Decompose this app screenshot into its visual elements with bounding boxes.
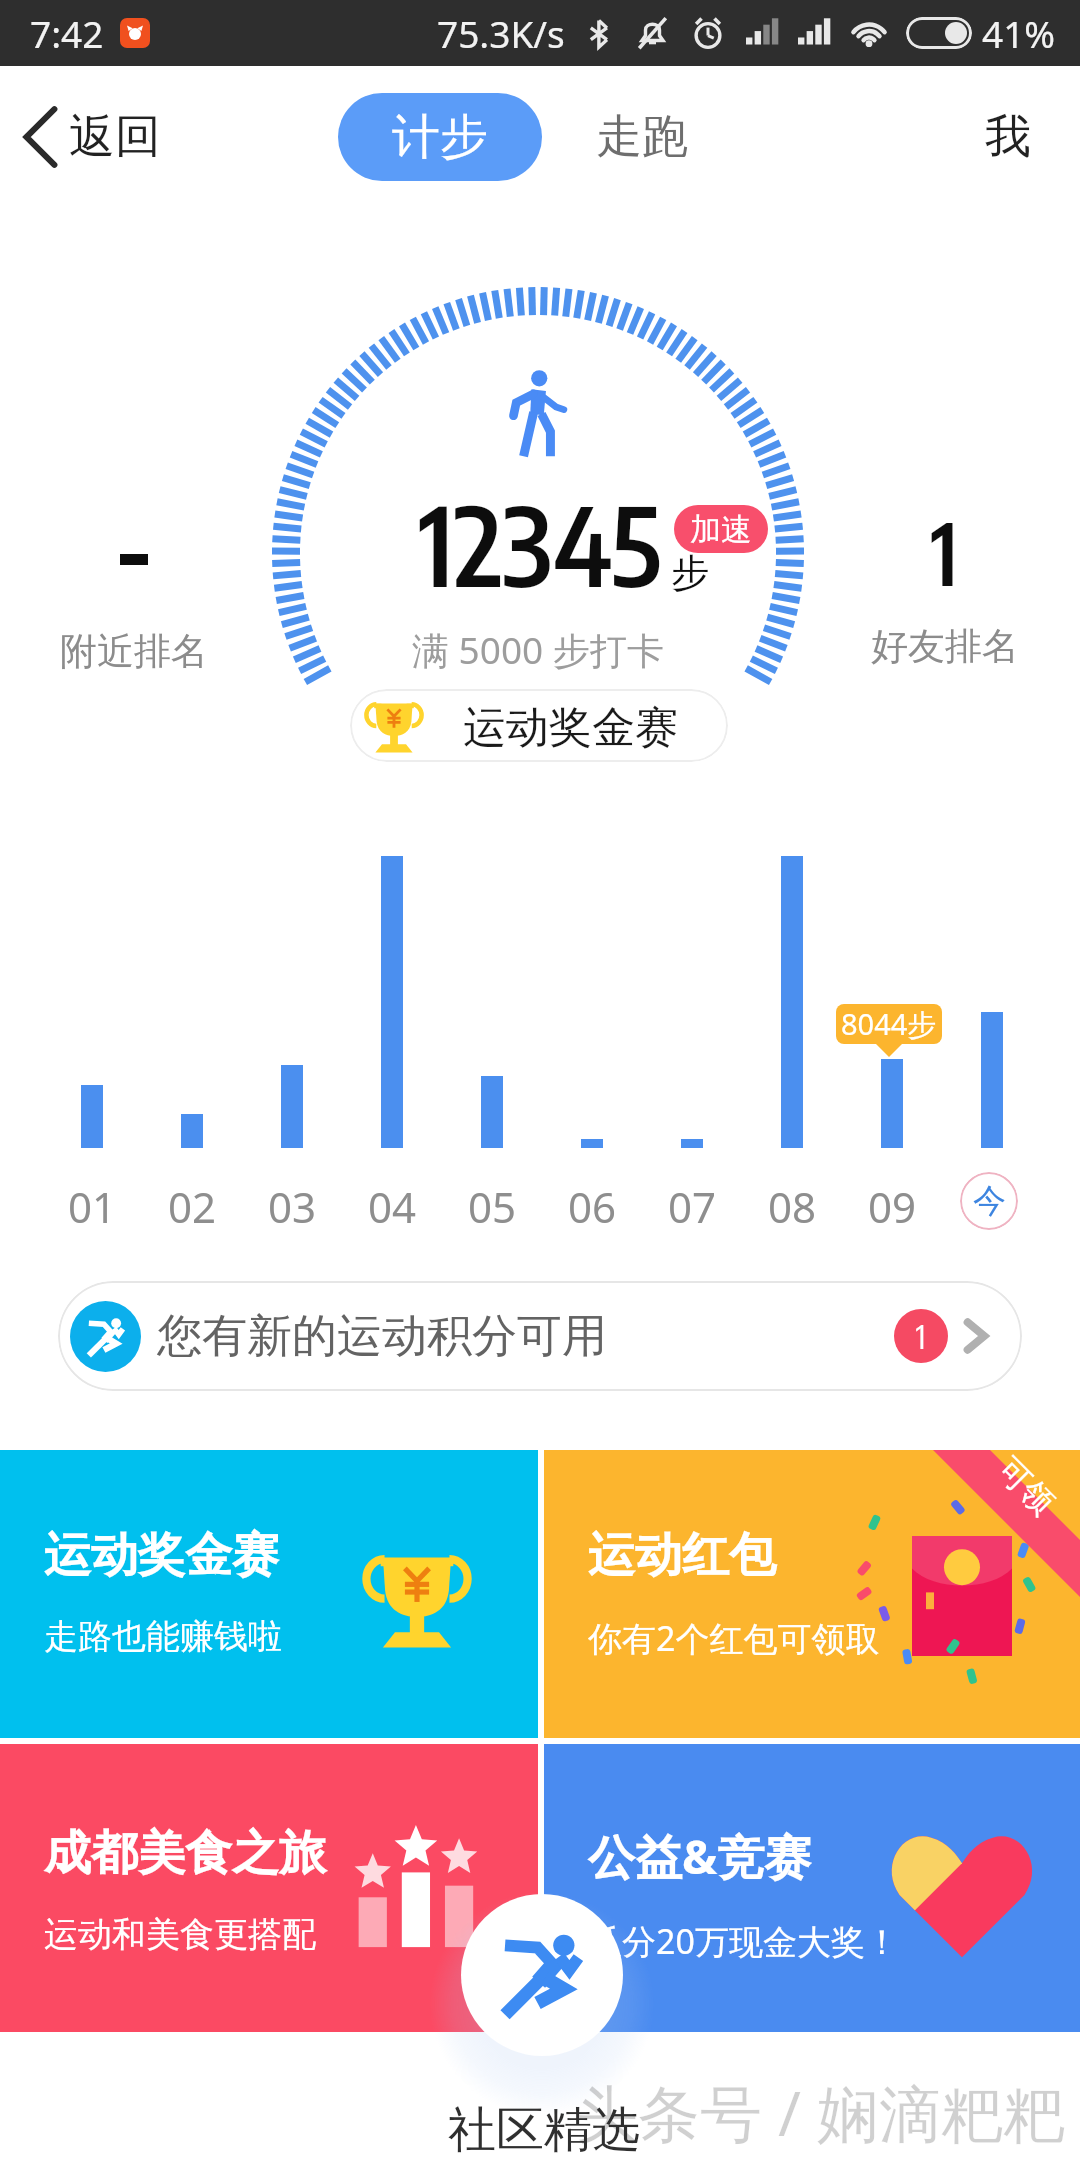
button[interactable]: 附近排名 bbox=[32, 554, 236, 675]
staticText: 满 5000 步打卡 bbox=[412, 624, 664, 675]
staticText: 运动奖金赛 bbox=[44, 1526, 279, 1585]
button[interactable]: 成都美食之旅 bbox=[0, 1744, 538, 2032]
button[interactable]: 我 bbox=[963, 92, 1053, 182]
button[interactable]: 加速 bbox=[674, 505, 768, 553]
other: Walking bbox=[509, 370, 565, 458]
button[interactable]: 运动奖金赛 bbox=[0, 1450, 538, 1738]
staticText: 1 bbox=[916, 1316, 926, 1356]
staticText: 我 bbox=[985, 108, 1031, 166]
staticText: 41% bbox=[982, 8, 1056, 58]
button[interactable]: 1 bbox=[843, 499, 1047, 670]
staticText: 走路也能赚钱啦 bbox=[44, 1615, 282, 1658]
staticText: 75.3K/s bbox=[437, 8, 565, 58]
staticText: 运动和美食更搭配 bbox=[44, 1913, 316, 1956]
staticText: 附近排名 bbox=[60, 628, 208, 675]
staticText: 瓜分20万现金大奖！ bbox=[588, 1918, 899, 1964]
staticText: 公益&竞赛 bbox=[588, 1824, 812, 1888]
staticText: 07 bbox=[668, 1178, 717, 1235]
staticText: 头条号 / 娴滴粑粑 bbox=[576, 2070, 1066, 2155]
staticText: 今 bbox=[973, 1180, 1006, 1222]
staticText: 步 bbox=[671, 549, 709, 597]
button[interactable]: 走跑 bbox=[574, 92, 710, 182]
staticText: 你有2个红包可领取 bbox=[588, 1615, 880, 1661]
button[interactable]: 社区精选 bbox=[448, 2100, 640, 2160]
button[interactable]: 运动红包 bbox=[544, 1450, 1080, 1738]
staticText: 03 bbox=[268, 1178, 317, 1235]
staticText: 06 bbox=[568, 1178, 617, 1235]
staticText: 走跑 bbox=[596, 108, 688, 166]
button[interactable]: Back bbox=[0, 92, 185, 182]
staticText: 7:42 bbox=[30, 8, 104, 58]
staticText: 08 bbox=[768, 1178, 817, 1235]
staticText: 04 bbox=[368, 1178, 417, 1235]
button[interactable]: 公益&竞赛 bbox=[544, 1744, 1080, 2032]
staticText: 1 bbox=[931, 499, 959, 604]
staticText: 可领 bbox=[989, 1449, 1063, 1523]
staticText: 成都美食之旅 bbox=[44, 1824, 326, 1883]
staticText: 返回 bbox=[69, 108, 161, 166]
staticText: 12345 bbox=[419, 476, 662, 611]
staticText: 8044步 bbox=[841, 1004, 937, 1044]
staticText: 01 bbox=[68, 1178, 117, 1235]
staticText: 运动红包 bbox=[588, 1526, 776, 1585]
staticText: 计步 bbox=[392, 107, 488, 167]
button[interactable]: 今 bbox=[960, 1172, 1018, 1230]
staticText: 您有新的运动积分可用 bbox=[157, 1308, 607, 1365]
button[interactable]: Start running bbox=[461, 1894, 623, 2056]
button[interactable]: 您有新的运动积分可用 bbox=[58, 1281, 1022, 1391]
staticText: 社区精选 bbox=[448, 2100, 640, 2160]
staticText: 运动奖金赛 bbox=[463, 701, 678, 755]
staticText: 好友排名 bbox=[871, 623, 1019, 670]
button[interactable]: 计步 bbox=[338, 93, 542, 181]
button[interactable]: 运动奖金赛 bbox=[350, 689, 728, 762]
staticText: 02 bbox=[168, 1178, 217, 1235]
staticText: 09 bbox=[868, 1178, 917, 1235]
staticText: 05 bbox=[468, 1178, 517, 1235]
other: Back bbox=[20, 106, 60, 168]
staticText: 加速 bbox=[690, 510, 752, 549]
